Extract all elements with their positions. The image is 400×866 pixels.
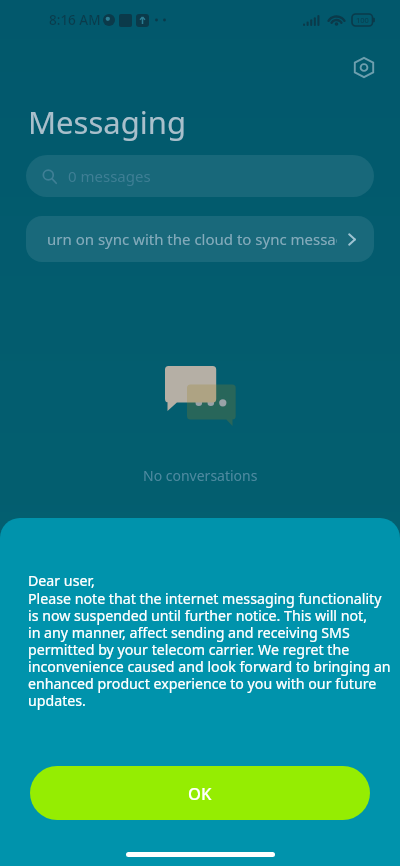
button[interactable]: urn on sync with the cloud to sync messa…: [26, 216, 374, 262]
staticText: Messaging: [28, 101, 186, 143]
button[interactable]: 0 messages: [26, 155, 374, 197]
button[interactable]: OK: [30, 766, 370, 820]
staticText: 8:16 AM: [49, 11, 101, 29]
staticText: Dear user, Please note that the internet…: [28, 571, 391, 710]
staticText: OK: [188, 782, 212, 804]
staticText: 100: [356, 15, 369, 25]
staticText: 0 messages: [68, 166, 151, 186]
staticText: No conversations: [143, 466, 258, 485]
button[interactable]: Settings: [344, 47, 384, 87]
staticText: urn on sync with the cloud to sync messa…: [47, 229, 337, 249]
